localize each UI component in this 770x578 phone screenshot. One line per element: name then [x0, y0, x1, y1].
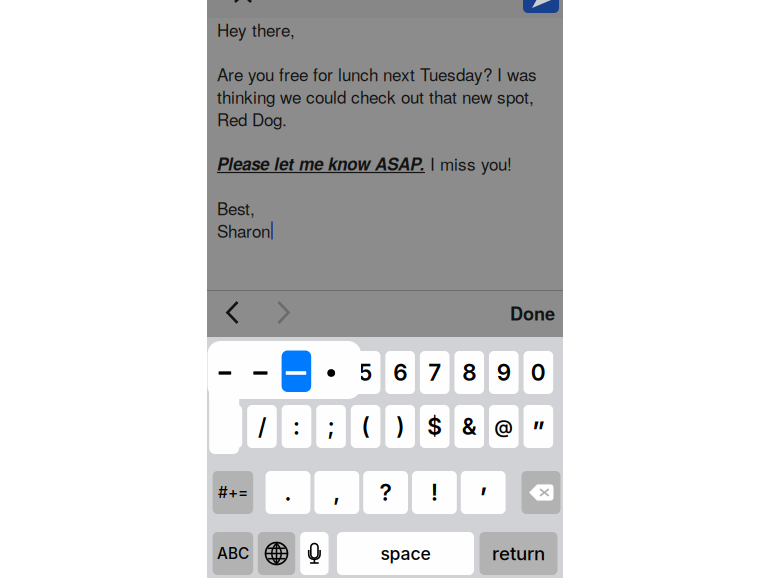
button[interactable]: )	[385, 405, 415, 448]
staticText: Done	[510, 300, 555, 326]
staticText: space	[380, 543, 430, 564]
staticText: ”	[532, 415, 544, 448]
button[interactable]: Done	[495, 291, 555, 335]
button[interactable]: 5	[351, 351, 380, 394]
staticText: Hey there,	[217, 17, 295, 42]
button[interactable]: &	[454, 405, 484, 448]
button[interactable]: ?	[363, 471, 408, 514]
staticText: Sharon	[217, 218, 270, 243]
staticText: ;	[328, 413, 335, 440]
button[interactable]: -	[213, 405, 242, 448]
staticText: (	[362, 413, 370, 440]
button[interactable]: (	[351, 405, 380, 448]
button[interactable]: 1	[213, 351, 242, 394]
button[interactable]: space	[337, 532, 474, 575]
button[interactable]: Previous field	[225, 301, 240, 325]
button[interactable]: /	[247, 405, 277, 448]
staticText: /	[258, 413, 266, 440]
staticText: )	[396, 413, 404, 440]
button[interactable]: 9	[489, 351, 519, 394]
button[interactable]: 0	[523, 351, 553, 394]
button[interactable]: 3	[282, 351, 311, 394]
staticText: 4	[324, 359, 339, 386]
staticText: &	[462, 413, 477, 440]
staticText: 7	[428, 359, 441, 386]
button[interactable]: Dictation	[300, 532, 329, 575]
staticText: ,	[333, 479, 340, 506]
staticText: thinking we could check out that new spo…	[217, 84, 534, 109]
staticText: 8	[462, 359, 476, 386]
staticText: Please let me know ASAP.	[217, 151, 425, 176]
button[interactable]: Delete	[521, 471, 560, 514]
staticText: $	[427, 413, 442, 440]
button[interactable]: 6	[385, 351, 415, 394]
button[interactable]: ’	[461, 471, 506, 514]
staticText: 3	[289, 359, 303, 386]
button[interactable]: 4	[316, 351, 346, 394]
staticText: Are you free for lunch next Tuesday? I w…	[217, 62, 537, 86]
button[interactable]: Next field	[275, 301, 290, 325]
staticText: 5	[359, 359, 373, 386]
button[interactable]: ,	[314, 471, 359, 514]
button[interactable]: Send	[523, 0, 559, 13]
staticText: #+=	[218, 483, 248, 502]
staticText: ABC	[217, 544, 249, 563]
button[interactable]: ABC	[213, 532, 253, 575]
staticText: ’	[480, 481, 487, 514]
staticText: 9	[497, 359, 511, 386]
button[interactable]: 2	[247, 351, 277, 394]
button[interactable]: 8	[454, 351, 484, 394]
button[interactable]: .	[266, 471, 310, 514]
staticText: Best,	[217, 196, 255, 220]
button[interactable]: !	[412, 471, 457, 514]
staticText: 2	[255, 359, 269, 386]
button[interactable]: Close	[234, 0, 252, 11]
button[interactable]: #+=	[213, 471, 253, 514]
staticText: 6	[393, 359, 407, 386]
button[interactable]: ”	[523, 405, 553, 448]
staticText: @	[494, 415, 513, 438]
staticText: return	[492, 542, 545, 565]
button[interactable]: @	[489, 405, 519, 448]
staticText: I miss you!	[425, 151, 512, 176]
staticText: ?	[380, 479, 392, 506]
staticText: :	[293, 413, 300, 440]
staticText: Red Dog.	[217, 107, 287, 131]
button[interactable]: $	[420, 405, 449, 448]
button[interactable]: 7	[420, 351, 449, 394]
staticText: .	[284, 479, 291, 506]
button[interactable]: Next keyboard	[258, 532, 295, 575]
button[interactable]: return	[479, 532, 557, 575]
button[interactable]: ;	[316, 405, 346, 448]
button[interactable]: :	[282, 405, 311, 448]
staticText: 0	[531, 359, 546, 386]
staticText: !	[431, 479, 438, 506]
staticText: 1	[223, 359, 232, 386]
